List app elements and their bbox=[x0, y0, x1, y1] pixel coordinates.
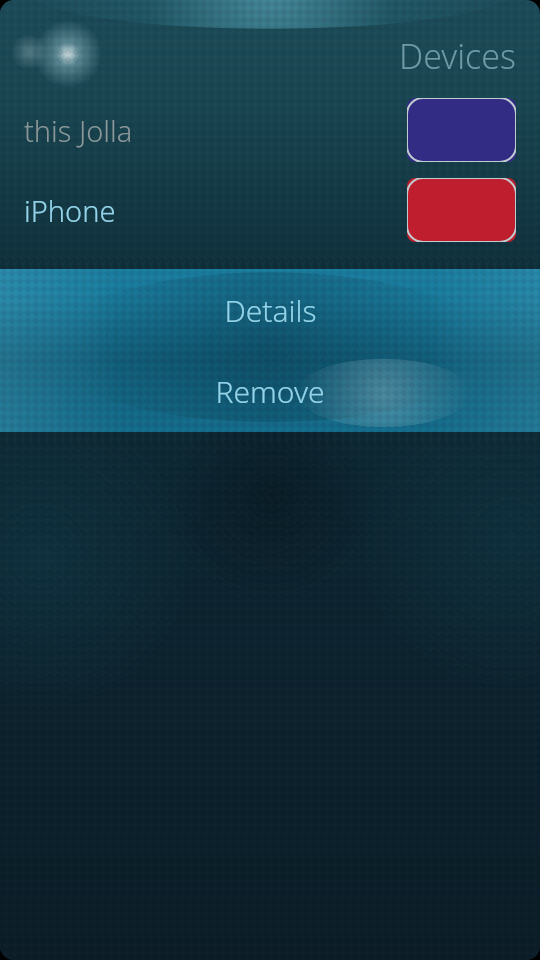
button[interactable]: Remove bbox=[0, 351, 540, 432]
button[interactable]: iPhone bbox=[0, 170, 540, 250]
staticText: iPhone bbox=[24, 191, 116, 230]
staticText: Remove bbox=[215, 371, 325, 412]
button[interactable]: Details bbox=[0, 269, 540, 351]
staticText: Details bbox=[224, 290, 317, 331]
staticText: this Jolla bbox=[24, 111, 133, 150]
button[interactable]: this Jolla bbox=[0, 90, 540, 170]
button[interactable]: this Jolla colour bbox=[407, 98, 516, 162]
staticText: Devices bbox=[399, 33, 516, 79]
button[interactable]: iPhone colour bbox=[407, 178, 516, 242]
